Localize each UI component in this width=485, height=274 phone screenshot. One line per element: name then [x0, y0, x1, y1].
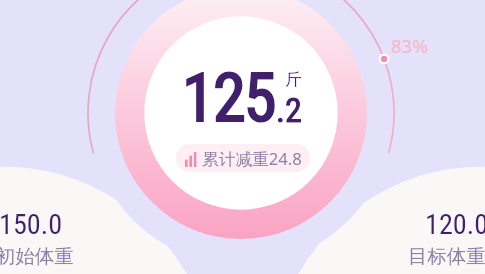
- staticText: 累计减重24.8: [202, 147, 302, 170]
- staticText: 83%: [391, 33, 428, 58]
- staticText: .2: [276, 90, 302, 130]
- staticText: 斤: [285, 69, 302, 90]
- staticText: 120.0: [425, 208, 485, 241]
- staticText: 初始体重: [0, 244, 74, 268]
- staticText: 150.0: [0, 208, 63, 241]
- staticText: 目标体重: [408, 244, 485, 268]
- button[interactable]: 累计减重24.8: [176, 144, 310, 172]
- staticText: 125: [182, 59, 275, 137]
